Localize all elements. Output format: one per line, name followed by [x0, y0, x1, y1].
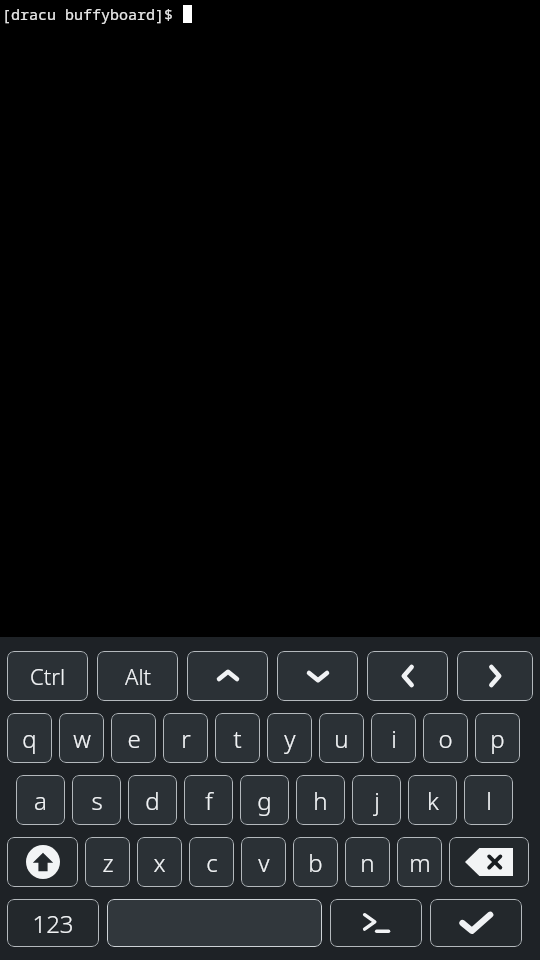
- staticText: b: [308, 846, 323, 879]
- staticText: j: [374, 784, 380, 817]
- button[interactable]: w: [59, 713, 104, 763]
- staticText: l: [486, 784, 492, 817]
- button[interactable]: x: [137, 837, 182, 887]
- button[interactable]: i: [371, 713, 416, 763]
- button[interactable]: Shift: [7, 837, 78, 887]
- staticText: a: [34, 784, 47, 817]
- staticText: x: [153, 846, 166, 879]
- button[interactable]: e: [111, 713, 156, 763]
- staticText: k: [427, 784, 439, 817]
- staticText: n: [360, 846, 375, 879]
- button[interactable]: q: [7, 713, 52, 763]
- staticText: c: [206, 846, 218, 879]
- staticText: h: [313, 784, 328, 817]
- staticText: w: [73, 722, 91, 755]
- button[interactable]: k: [408, 775, 457, 825]
- button[interactable]: Right: [457, 651, 533, 701]
- button[interactable]: t: [215, 713, 260, 763]
- staticText: z: [102, 846, 114, 879]
- staticText: d: [145, 784, 160, 817]
- button[interactable]: f: [184, 775, 233, 825]
- button[interactable]: Left: [367, 651, 448, 701]
- button[interactable]: g: [240, 775, 289, 825]
- staticText: e: [127, 722, 141, 755]
- staticText: v: [258, 846, 270, 879]
- staticText: 123: [32, 907, 74, 940]
- button[interactable]: Down: [277, 651, 358, 701]
- button[interactable]: m: [397, 837, 442, 887]
- staticText: Ctrl: [30, 661, 65, 691]
- button[interactable]: Ctrl: [7, 651, 88, 701]
- staticText: r: [181, 722, 191, 755]
- button[interactable]: l: [464, 775, 513, 825]
- staticText: f: [205, 784, 213, 817]
- button[interactable]: Terminal: [330, 899, 422, 947]
- staticText: t: [233, 722, 242, 755]
- button[interactable]: r: [163, 713, 208, 763]
- button[interactable]: y: [267, 713, 312, 763]
- staticText: p: [490, 722, 505, 755]
- button[interactable]: s: [72, 775, 121, 825]
- staticText: m: [409, 846, 431, 879]
- button[interactable]: Backspace: [449, 837, 529, 887]
- staticText: s: [91, 784, 103, 817]
- staticText: [dracu buffyboard]$: [2, 4, 183, 24]
- staticText: Alt: [125, 661, 151, 691]
- button[interactable]: Alt: [97, 651, 178, 701]
- button[interactable]: Enter: [430, 899, 522, 947]
- button[interactable]: p: [475, 713, 520, 763]
- button[interactable]: b: [293, 837, 338, 887]
- button[interactable]: d: [128, 775, 177, 825]
- staticText: u: [334, 722, 349, 755]
- button[interactable]: n: [345, 837, 390, 887]
- button[interactable]: h: [296, 775, 345, 825]
- staticText: o: [438, 722, 453, 755]
- button[interactable]: j: [352, 775, 401, 825]
- staticText: i: [391, 722, 397, 755]
- button[interactable]: u: [319, 713, 364, 763]
- staticText: q: [22, 722, 37, 755]
- button[interactable]: o: [423, 713, 468, 763]
- button[interactable]: a: [16, 775, 65, 825]
- button[interactable]: Up: [187, 651, 268, 701]
- button[interactable]: 123: [7, 899, 99, 947]
- staticText: g: [257, 784, 272, 817]
- button[interactable]: v: [241, 837, 286, 887]
- button[interactable]: c: [189, 837, 234, 887]
- button[interactable]: z: [85, 837, 130, 887]
- button[interactable]: Space: [107, 899, 322, 947]
- staticText: y: [284, 722, 296, 755]
